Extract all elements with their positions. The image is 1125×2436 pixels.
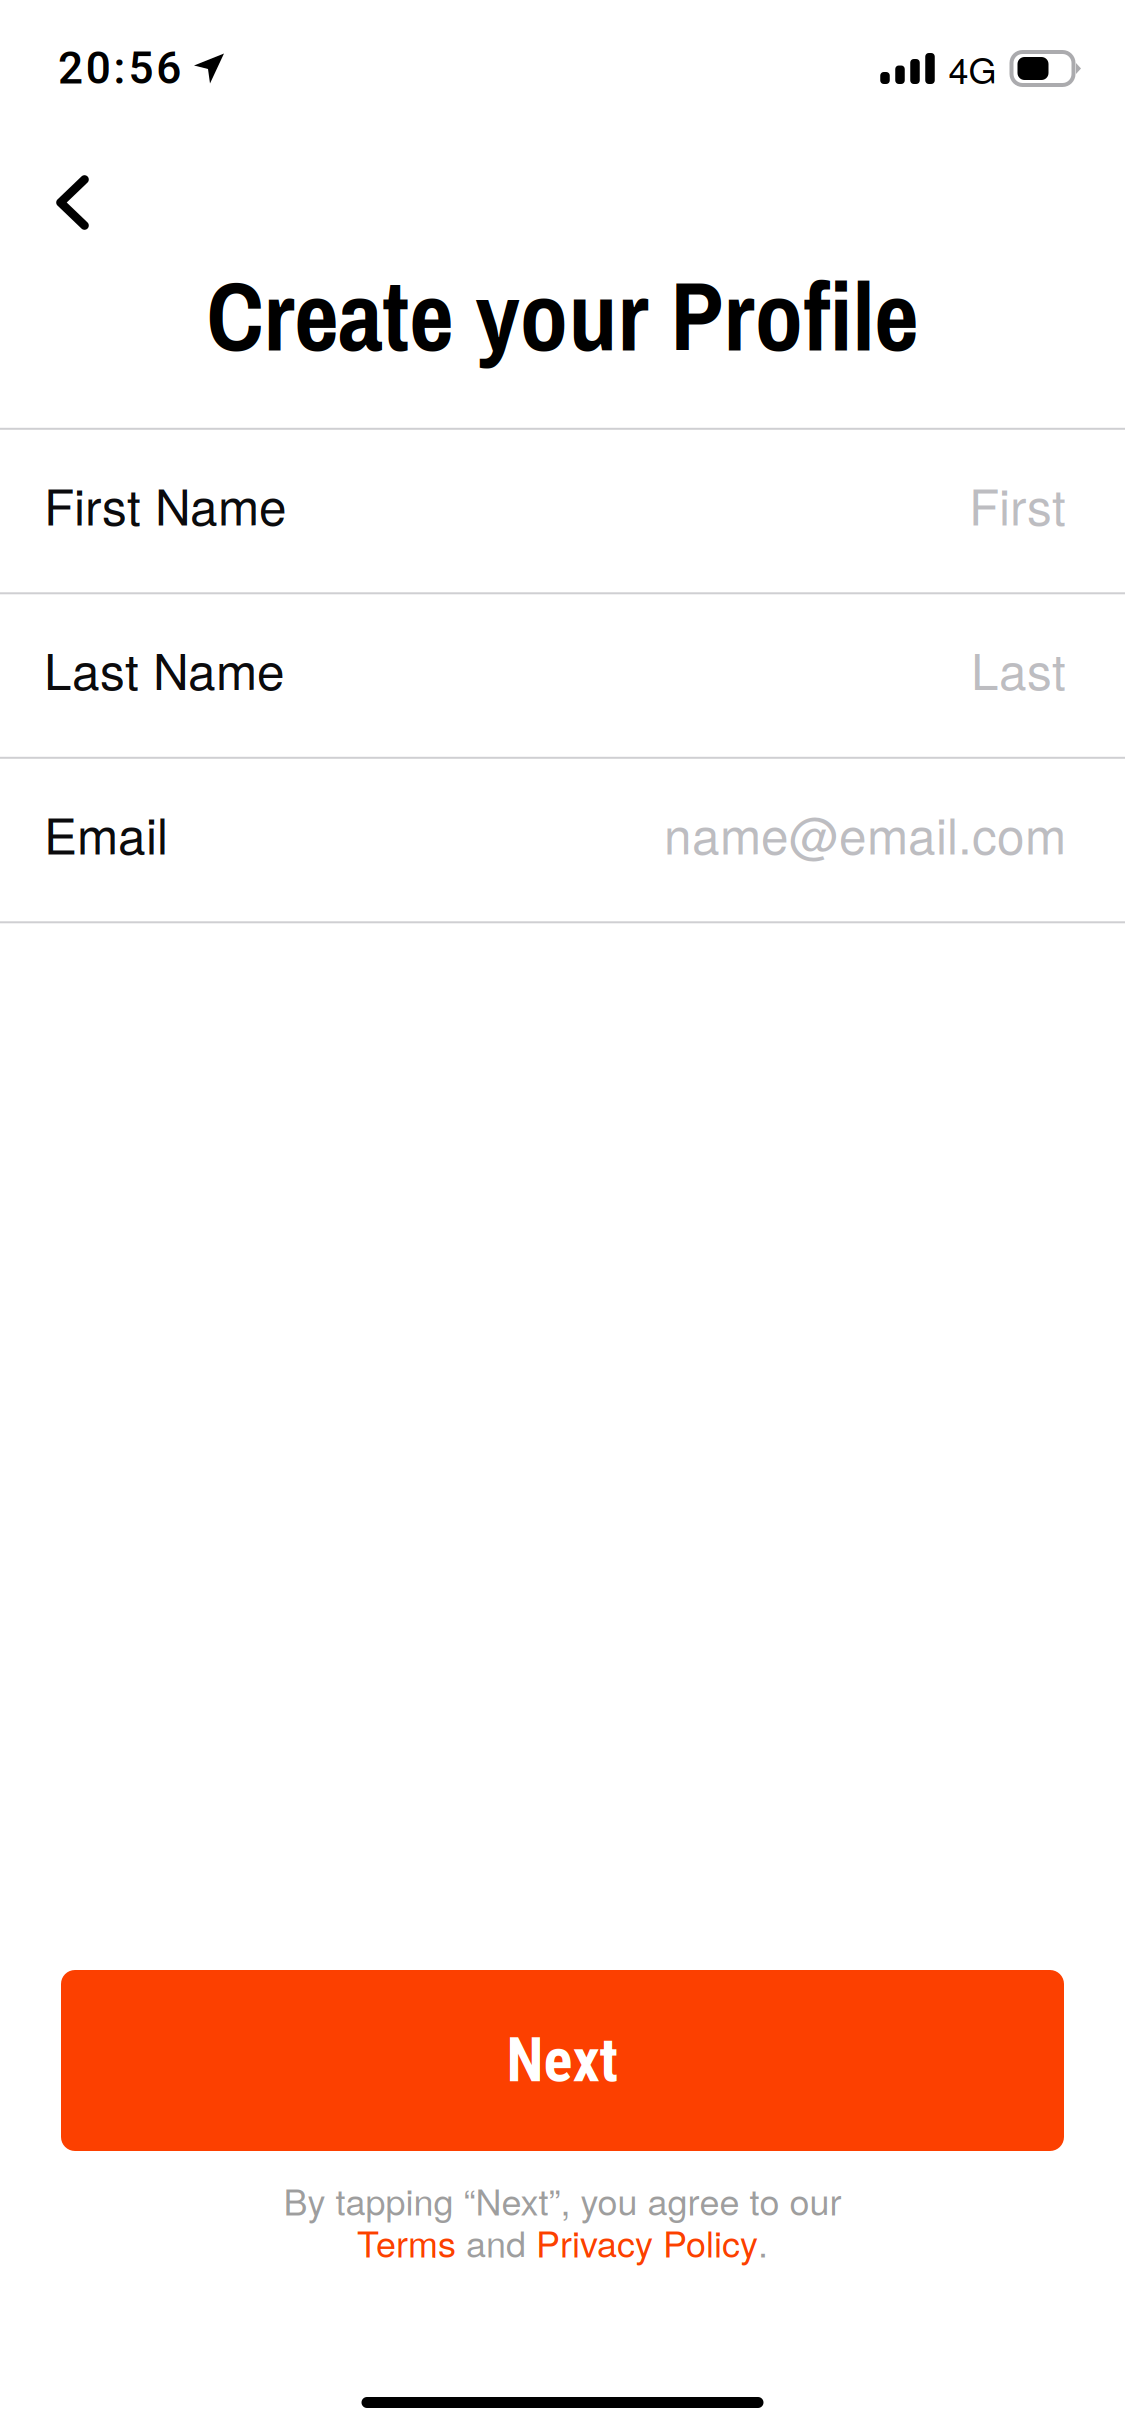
button[interactable]: Privacy Policy	[536, 2216, 758, 2268]
staticText: 20:56	[58, 43, 181, 94]
staticText: Email	[44, 798, 168, 868]
button[interactable]: First Name	[0, 430, 1125, 594]
staticText: By tapping “Next”, you agree to our	[283, 2174, 841, 2226]
staticText: Create your Profile	[206, 250, 918, 381]
button[interactable]: Next	[61, 1970, 1064, 2151]
staticText: Privacy Policy	[536, 2216, 758, 2268]
staticText: .	[758, 2216, 768, 2268]
staticText: Last	[971, 633, 1066, 704]
staticText: 4G	[948, 43, 996, 94]
staticText: and	[456, 2216, 536, 2268]
staticText: First	[969, 469, 1066, 539]
staticText: First Name	[44, 469, 287, 539]
button[interactable]: Email	[0, 759, 1125, 923]
button[interactable]: Last Name	[0, 594, 1125, 759]
staticText: Last Name	[44, 633, 285, 704]
staticText: Terms	[357, 2216, 456, 2268]
staticText: name@email.com	[664, 798, 1066, 868]
staticText: Next	[506, 2025, 618, 2096]
button[interactable]: Terms	[357, 2216, 456, 2268]
button[interactable]: Back	[0, 137, 123, 250]
